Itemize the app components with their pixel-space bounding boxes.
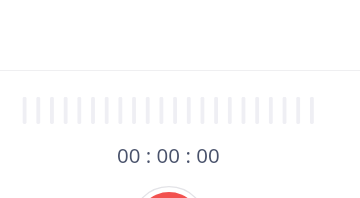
staticText: 00 : 00 : 00 xyxy=(117,141,220,169)
button[interactable]: Start recording xyxy=(129,184,209,198)
